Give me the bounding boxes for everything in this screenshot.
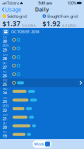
staticText: SUN [2,53,7,56]
staticText: Week [34,141,44,147]
button[interactable]: WED [0,87,84,96]
button[interactable]: FRI [0,130,84,139]
staticText: SUN [2,113,7,116]
button[interactable]: SAT [0,61,84,70]
staticText: Usage [5,6,21,13]
staticText: 5.6 kWh [22,23,36,28]
staticText: MON [2,104,8,108]
staticText: Daily [35,6,49,13]
staticText: 23 [2,99,6,104]
staticText: OCTOBER 2018 [11,29,39,34]
staticText: 25 [2,82,6,87]
staticText: Telstra [7,0,19,6]
staticText: 22 [2,107,6,113]
button[interactable]: MON [0,44,84,53]
staticText: FRI [2,130,6,134]
staticText: SAT [2,61,6,65]
staticText: 29 [2,47,6,53]
button[interactable]: SUN [0,53,84,61]
staticText: MON [2,44,8,48]
staticText: 21 [2,116,6,121]
staticText: 26 [2,73,6,78]
staticText: FRI [2,70,6,73]
button[interactable]: SUN [0,113,84,121]
staticText: $1.37 [2,19,20,28]
button[interactable]: TUE [0,96,84,104]
staticText: $1.92 [42,19,60,28]
button[interactable]: MON [0,104,84,113]
staticText: 19 [2,133,6,139]
staticText: 30 [2,39,6,44]
button[interactable]: THU [0,78,84,87]
staticText: THU [2,79,7,82]
staticText: SAT [2,122,6,125]
staticText: 100% [67,0,76,6]
staticText: 27 [2,64,6,70]
staticText: Bought from grid [47,13,77,19]
button[interactable]: Week [32,140,51,148]
staticText: 20 [2,125,6,130]
staticText: Sold to grid [7,13,26,19]
button[interactable]: TUE [0,35,84,44]
button[interactable]: Usage [0,5,23,14]
staticText: WED [2,87,7,91]
staticText: 28 [2,56,6,61]
staticText: 4.3 kWh [62,23,76,28]
button[interactable]: SAT [0,121,84,130]
staticText: TUE [2,36,6,39]
staticText: 9:41 am [38,0,52,6]
button[interactable]: FRI [0,70,84,78]
staticText: TUE [2,96,6,99]
staticText: 24 [2,90,6,96]
